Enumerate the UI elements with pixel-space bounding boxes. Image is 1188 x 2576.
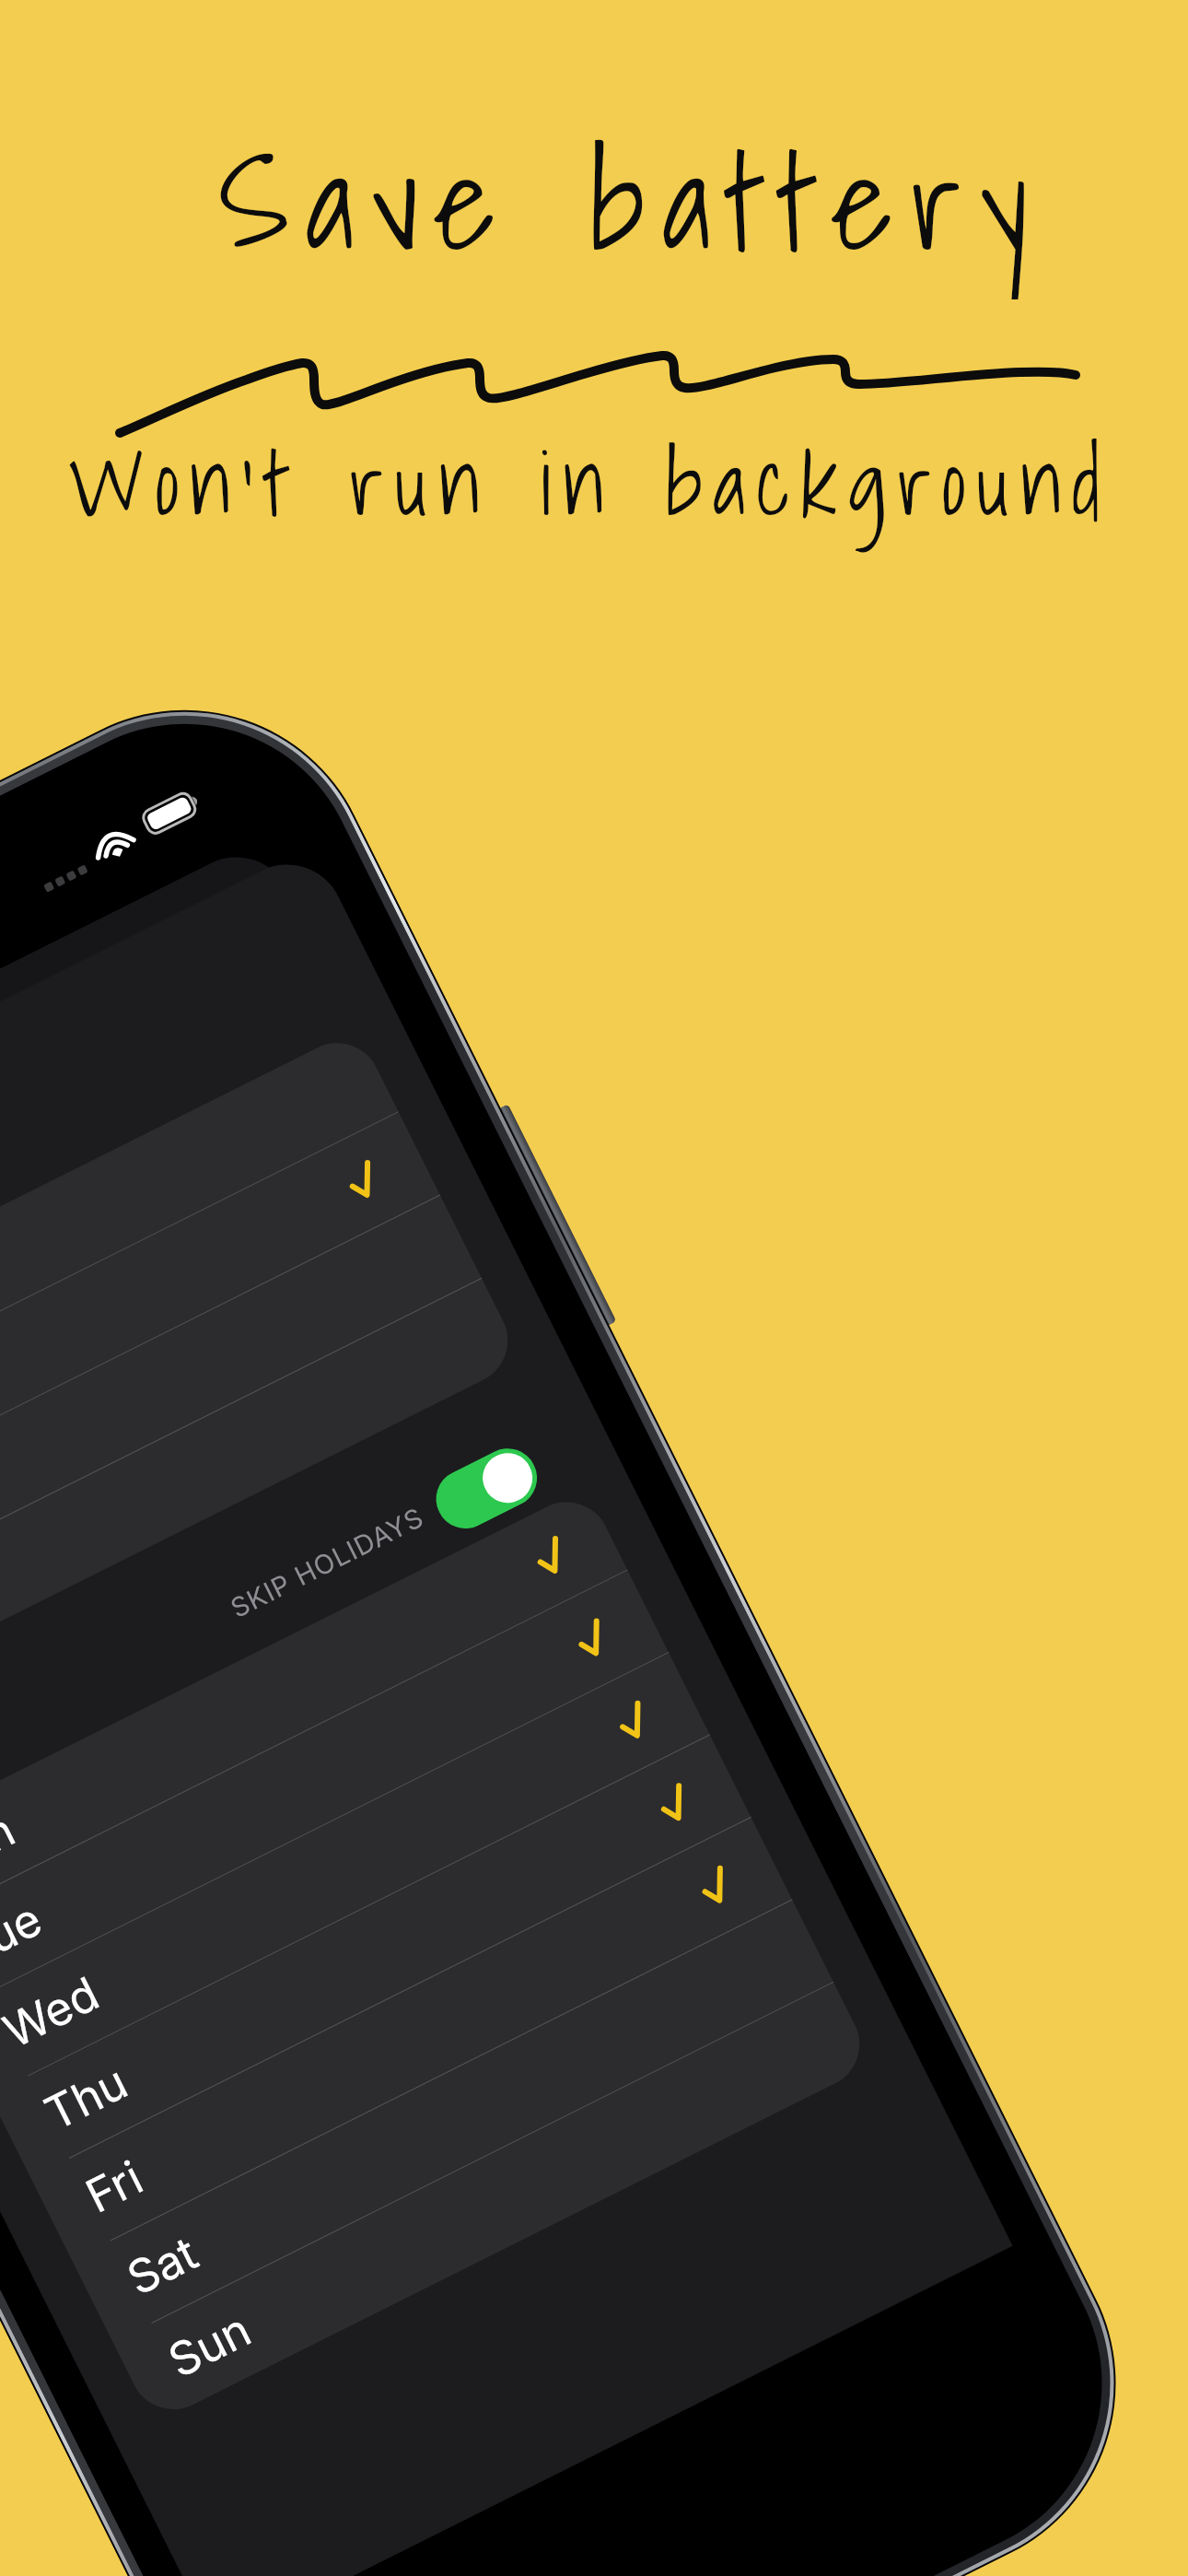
staticText: Sat bbox=[118, 2225, 206, 2306]
other: Wi-Fi bbox=[90, 823, 137, 864]
button[interactable]: Sun bbox=[113, 1981, 874, 2424]
staticText: Thu bbox=[36, 2054, 136, 2141]
staticText: Wed bbox=[0, 1965, 108, 2059]
button[interactable]: Fri bbox=[30, 1817, 792, 2260]
staticText: Fri bbox=[77, 2150, 151, 2224]
button[interactable] bbox=[426, 1438, 547, 1539]
button[interactable]: SKIP HOLIDAYS bbox=[225, 1501, 429, 1624]
staticText: Won't run in background bbox=[68, 412, 1111, 553]
button[interactable] bbox=[0, 1111, 440, 1555]
button[interactable]: Tue bbox=[0, 1569, 669, 2012]
other: Cellular signal bbox=[43, 856, 111, 905]
button[interactable]: Mon bbox=[0, 1487, 627, 1930]
button[interactable] bbox=[0, 1028, 398, 1472]
staticText: Mon bbox=[0, 1801, 24, 1894]
staticText: Tue bbox=[0, 1891, 51, 1976]
button[interactable] bbox=[0, 1194, 482, 1638]
other: Battery bbox=[141, 787, 206, 836]
button[interactable] bbox=[0, 1278, 523, 1721]
staticText: Save battery bbox=[219, 96, 1044, 306]
button[interactable]: Wed bbox=[0, 1652, 710, 2095]
staticText: Sun bbox=[160, 2301, 260, 2389]
button[interactable]: Thu bbox=[0, 1734, 751, 2177]
button[interactable]: Sat bbox=[71, 1899, 833, 2342]
